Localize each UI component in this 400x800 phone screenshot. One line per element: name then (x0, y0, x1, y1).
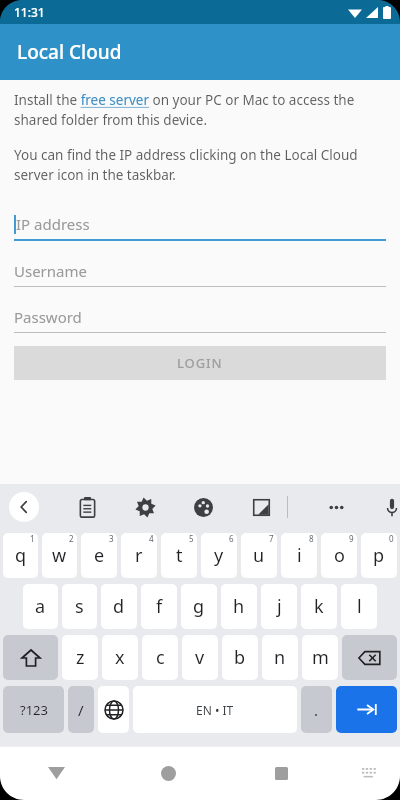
button[interactable]: c (142, 635, 178, 680)
button[interactable]: w (42, 533, 77, 578)
button[interactable]: Back (9, 492, 39, 522)
button[interactable]: x (102, 635, 138, 680)
button[interactable]: r (121, 533, 157, 578)
staticText: y (214, 543, 224, 568)
staticText: 7 (269, 533, 274, 544)
staticText: f (156, 594, 163, 619)
button[interactable]: m (302, 635, 338, 680)
staticText: b (234, 645, 246, 670)
staticText: 9 (349, 533, 354, 544)
button[interactable]: Theme (185, 489, 221, 525)
staticText: l (357, 594, 362, 619)
button[interactable]: d (101, 584, 137, 629)
button[interactable]: f (141, 584, 177, 629)
staticText: o (334, 543, 345, 568)
staticText: m (312, 645, 329, 670)
staticText: 1 (30, 533, 35, 544)
staticText: u (253, 543, 265, 568)
button[interactable]: Backspace (342, 635, 397, 680)
button[interactable]: g (181, 584, 217, 629)
button[interactable]: . (301, 686, 332, 733)
staticText: ?123 (20, 701, 48, 719)
staticText: Local Cloud (17, 39, 122, 65)
staticText: 5 (189, 533, 194, 544)
button[interactable]: Clipboard (69, 489, 105, 525)
staticText: v (195, 645, 205, 670)
button[interactable]: e (81, 533, 117, 578)
staticText: . (314, 700, 319, 720)
button[interactable]: Change language (98, 686, 129, 733)
button[interactable]: s (62, 584, 97, 629)
button[interactable]: t (161, 533, 197, 578)
staticText: a (35, 594, 46, 619)
button[interactable]: LOGIN (14, 346, 386, 380)
button[interactable]: IP address (14, 209, 386, 241)
button[interactable]: Home (112, 746, 225, 800)
button[interactable]: n (262, 635, 298, 680)
staticText: 3 (109, 533, 114, 544)
button[interactable]: Hide keyboard (338, 746, 400, 800)
button[interactable]: EN • IT (133, 686, 297, 733)
staticText: 0 (389, 533, 394, 544)
staticText: z (76, 645, 85, 670)
staticText: c (156, 645, 165, 670)
staticText: 2 (69, 533, 74, 544)
staticText: IP address (16, 214, 90, 234)
staticText: You can find the IP address clicking on … (14, 146, 386, 184)
staticText: i (297, 543, 302, 568)
button[interactable]: v (182, 635, 218, 680)
staticText: q (15, 543, 27, 568)
button[interactable]: o (321, 533, 357, 578)
button[interactable]: h (221, 584, 257, 629)
staticText: n (274, 645, 286, 670)
staticText: e (94, 543, 105, 568)
staticText: 11:31 (14, 4, 45, 20)
button[interactable]: b (222, 635, 258, 680)
staticText: LOGIN (177, 354, 223, 372)
button[interactable]: Back (0, 746, 112, 800)
button[interactable]: Settings (127, 489, 163, 525)
staticText: / (78, 700, 84, 720)
button[interactable]: Username (14, 256, 386, 287)
button[interactable]: Resize (243, 489, 279, 525)
staticText: Password (14, 307, 82, 327)
staticText: d (113, 594, 125, 619)
button[interactable]: p (361, 533, 397, 578)
button[interactable]: q (3, 533, 38, 578)
button[interactable]: l (341, 584, 377, 629)
staticText: s (75, 594, 84, 619)
button[interactable]: Password (14, 302, 386, 333)
staticText: h (233, 594, 245, 619)
button[interactable]: z (62, 635, 98, 680)
button[interactable]: a (23, 584, 58, 629)
staticText: j (277, 594, 282, 619)
staticText: w (52, 543, 67, 568)
button[interactable]: Voice input (384, 489, 400, 525)
staticText: 8 (309, 533, 314, 544)
staticText: 6 (229, 533, 234, 544)
staticText: EN • IT (196, 702, 234, 718)
button[interactable]: More options (318, 489, 354, 525)
button[interactable]: j (261, 584, 297, 629)
staticText: r (135, 543, 143, 568)
staticText: x (115, 645, 125, 670)
button[interactable]: y (201, 533, 237, 578)
staticText: Username (14, 261, 87, 281)
staticText: p (373, 543, 385, 568)
staticText: t (176, 543, 183, 568)
staticText: k (314, 594, 324, 619)
staticText: 4 (149, 533, 154, 544)
staticText: Install the free server on your PC or Ma… (14, 91, 386, 129)
button[interactable]: / (68, 686, 94, 733)
button[interactable]: Next (336, 686, 397, 733)
button[interactable]: Recents (225, 746, 338, 800)
button[interactable]: u (241, 533, 277, 578)
button[interactable]: i (281, 533, 317, 578)
staticText: g (193, 594, 205, 619)
button[interactable]: Shift (3, 635, 58, 680)
button[interactable]: ?123 (3, 686, 64, 733)
button[interactable]: k (301, 584, 337, 629)
